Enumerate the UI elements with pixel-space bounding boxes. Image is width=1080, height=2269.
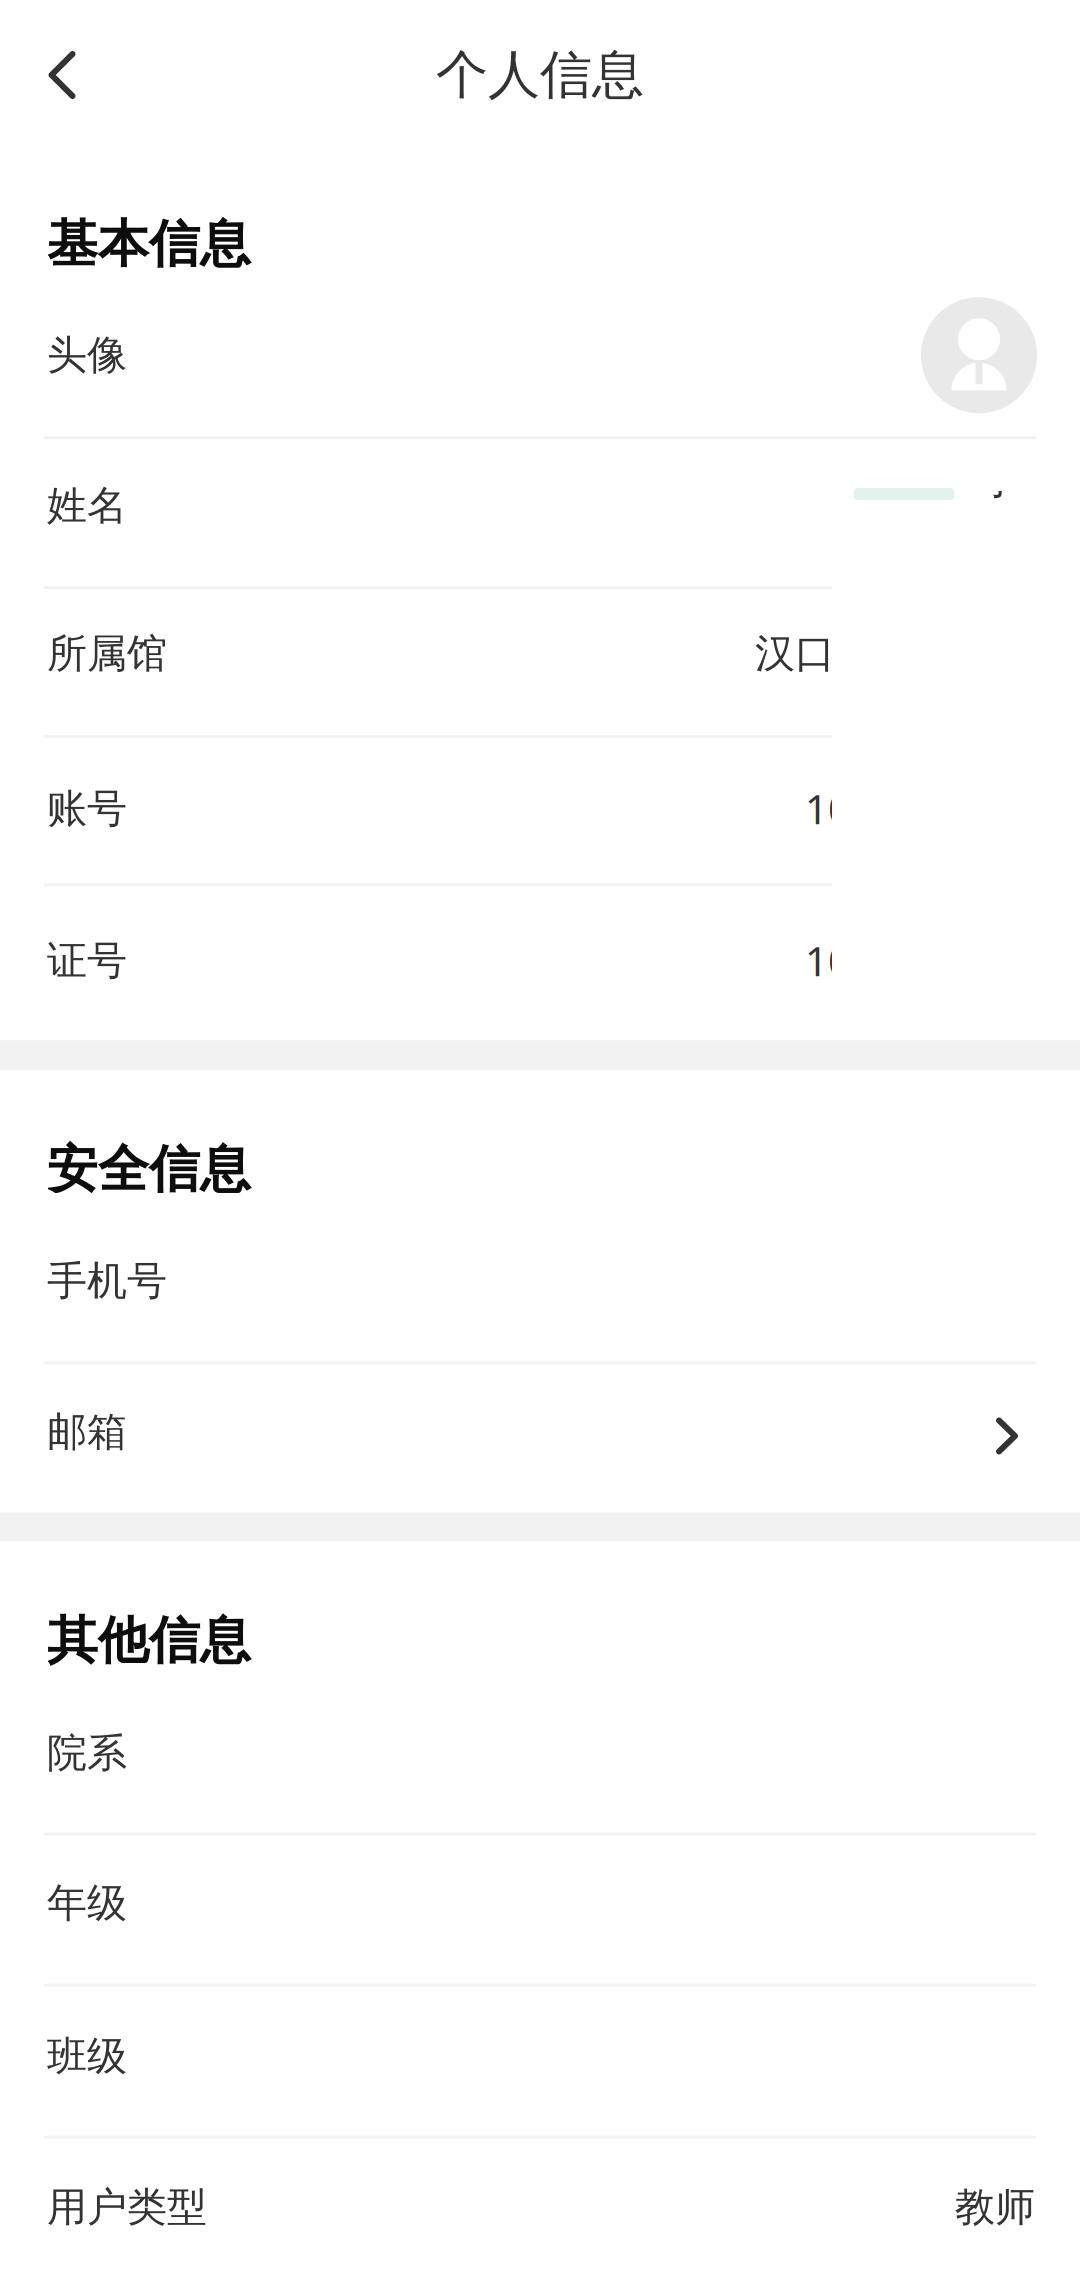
button[interactable]: 年级 [0,1836,1080,1984]
button[interactable]: 所属馆 [0,589,1080,735]
staticText: 其他信息 [47,1609,251,1672]
staticText: 汉口校区分馆库 [755,629,1035,678]
button[interactable]: 手机号 [0,1203,1080,1361]
button[interactable]: 邮箱 [0,1364,1080,1512]
staticText: 班级 [47,2032,127,2081]
button[interactable]: 班级 [0,1987,1080,2136]
staticText: 邮箱 [47,1407,127,1456]
staticText: 证号 [47,936,127,985]
staticText: 年级 [47,1879,127,1928]
staticText: 小王口 [979,455,1019,602]
staticText: 1088888888 [805,934,1035,987]
button[interactable]: 院系 [0,1674,1080,1833]
button[interactable]: 头像 [0,275,1080,436]
staticText: 教师 [955,2183,1035,2232]
button[interactable]: Back [12,25,112,125]
button[interactable]: 用户类型 [0,2139,1080,2269]
button[interactable]: 证号 [0,886,1080,1040]
button[interactable]: 账号 [0,738,1080,883]
staticText: 安全信息 [47,1138,251,1200]
staticText: 用户类型 [47,2183,207,2232]
staticText: 手机号 [47,1256,167,1305]
staticText: 所属馆 [47,629,167,678]
staticText: 姓名 [47,481,127,530]
staticText: 基本信息 [47,213,251,275]
staticText: 账号 [47,784,127,833]
staticText: 个人信息 [436,43,644,107]
button[interactable]: 姓名 [0,439,1080,586]
staticText: 1088888888 [805,782,1035,835]
staticText: 头像 [47,331,127,380]
staticText: 院系 [47,1729,127,1778]
